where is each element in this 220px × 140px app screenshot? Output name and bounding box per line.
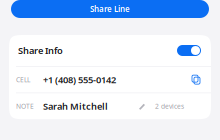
- button[interactable]: Share Info: [9, 35, 211, 66]
- staticText: Share Info: [18, 44, 63, 57]
- staticText: Share Line: [90, 4, 130, 14]
- staticText: +1 (408) 555-0142: [43, 73, 116, 86]
- staticText: Sarah Mitchell: [43, 100, 108, 112]
- staticText: 2 devices: [155, 102, 184, 111]
- button[interactable]: Edit label: [138, 102, 146, 110]
- button[interactable]: Copy number: [192, 75, 200, 84]
- staticText: CELL: [16, 75, 30, 84]
- button[interactable]: Share Line: [11, 0, 209, 18]
- staticText: NOTE: [16, 102, 34, 111]
